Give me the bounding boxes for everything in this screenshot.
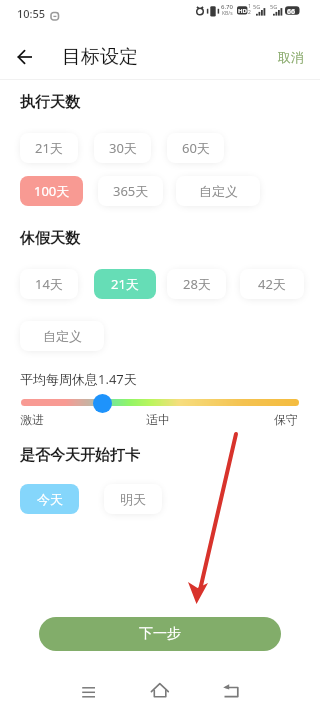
button[interactable]: Back bbox=[11, 43, 39, 71]
staticText: 明天 bbox=[120, 491, 146, 507]
button[interactable]: 取消 bbox=[272, 45, 310, 69]
button[interactable]: Back bbox=[216, 678, 246, 704]
button[interactable]: 14天 bbox=[20, 269, 78, 299]
staticText: 休假天数 bbox=[20, 229, 80, 248]
staticText: 平均每周休息1.47天 bbox=[20, 370, 137, 388]
staticText: 1 bbox=[248, 3, 251, 10]
staticText: HD bbox=[238, 7, 247, 15]
staticText: 是否今天开始打卡 bbox=[20, 446, 140, 465]
button[interactable]: 自定义 bbox=[20, 321, 104, 351]
staticText: 66 bbox=[287, 7, 296, 17]
staticText: 2 bbox=[248, 9, 251, 16]
button[interactable]: 100天 bbox=[20, 176, 83, 206]
staticText: 42天 bbox=[258, 275, 286, 293]
staticText: 28天 bbox=[183, 275, 211, 293]
staticText: 365天 bbox=[113, 182, 149, 200]
staticText: 5G bbox=[270, 3, 278, 10]
staticText: 100天 bbox=[34, 182, 70, 200]
button[interactable]: 42天 bbox=[240, 269, 304, 299]
staticText: 5G bbox=[253, 3, 261, 10]
staticText: KB/s bbox=[222, 10, 233, 17]
staticText: 取消 bbox=[278, 49, 304, 65]
button[interactable]: 30天 bbox=[94, 133, 151, 163]
staticText: 6.70 bbox=[221, 3, 233, 11]
button[interactable]: Recent apps bbox=[74, 678, 104, 704]
staticText: 目标设定 bbox=[62, 45, 138, 69]
staticText: 自定义 bbox=[43, 328, 82, 344]
button[interactable]: 21天 bbox=[94, 269, 156, 299]
staticText: 保守 bbox=[274, 412, 298, 427]
button[interactable]: 今天 bbox=[20, 484, 79, 514]
staticText: 14天 bbox=[35, 275, 63, 293]
button[interactable]: Rest level slider bbox=[93, 394, 112, 413]
button[interactable]: 21天 bbox=[20, 133, 78, 163]
staticText: 60天 bbox=[182, 139, 210, 157]
staticText: 21天 bbox=[111, 275, 139, 293]
staticText: 下一步 bbox=[139, 625, 181, 643]
button[interactable]: Home bbox=[145, 678, 175, 704]
button[interactable]: 60天 bbox=[167, 133, 224, 163]
staticText: 执行天数 bbox=[20, 93, 80, 112]
staticText: 10:55 bbox=[17, 6, 46, 21]
button[interactable]: 28天 bbox=[167, 269, 226, 299]
staticText: 适中 bbox=[146, 412, 170, 427]
staticText: 激进 bbox=[20, 412, 44, 427]
button[interactable]: 明天 bbox=[104, 484, 162, 514]
staticText: 30天 bbox=[109, 139, 137, 157]
button[interactable]: 365天 bbox=[98, 176, 163, 206]
staticText: 21天 bbox=[35, 139, 63, 157]
staticText: 自定义 bbox=[199, 183, 238, 199]
staticText: 今天 bbox=[37, 491, 63, 507]
button[interactable]: 下一步 bbox=[39, 617, 281, 651]
button[interactable]: 自定义 bbox=[176, 176, 260, 206]
